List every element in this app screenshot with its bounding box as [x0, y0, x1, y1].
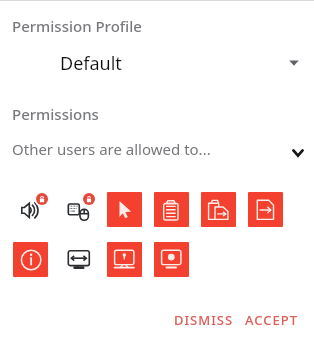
- button[interactable]: Other users are allowed to...: [0, 136, 314, 162]
- staticText: ACCEPT: [245, 311, 298, 329]
- staticText: Other users are allowed to...: [12, 139, 211, 159]
- button[interactable]: Default: [0, 48, 314, 78]
- staticText: DISMISS: [174, 311, 234, 329]
- button[interactable]: Keyboard and mouse: [60, 192, 95, 227]
- button[interactable]: Screen privacy: [107, 242, 142, 277]
- button[interactable]: ACCEPT: [241, 306, 302, 334]
- button[interactable]: DISMISS: [170, 306, 238, 334]
- button[interactable]: Resize display: [60, 242, 95, 277]
- button[interactable]: Information: [13, 242, 48, 277]
- button[interactable]: File transfer: [248, 192, 283, 227]
- button[interactable]: Clipboard transfer: [201, 192, 236, 227]
- staticText: Permissions: [12, 104, 99, 124]
- button[interactable]: Clipboard: [154, 192, 189, 227]
- button[interactable]: Screen recording: [154, 242, 189, 277]
- staticText: Default: [60, 51, 122, 76]
- staticText: Permission Profile: [12, 16, 142, 36]
- button[interactable]: Audio: [13, 192, 48, 227]
- button[interactable]: Pointer: [107, 192, 142, 227]
